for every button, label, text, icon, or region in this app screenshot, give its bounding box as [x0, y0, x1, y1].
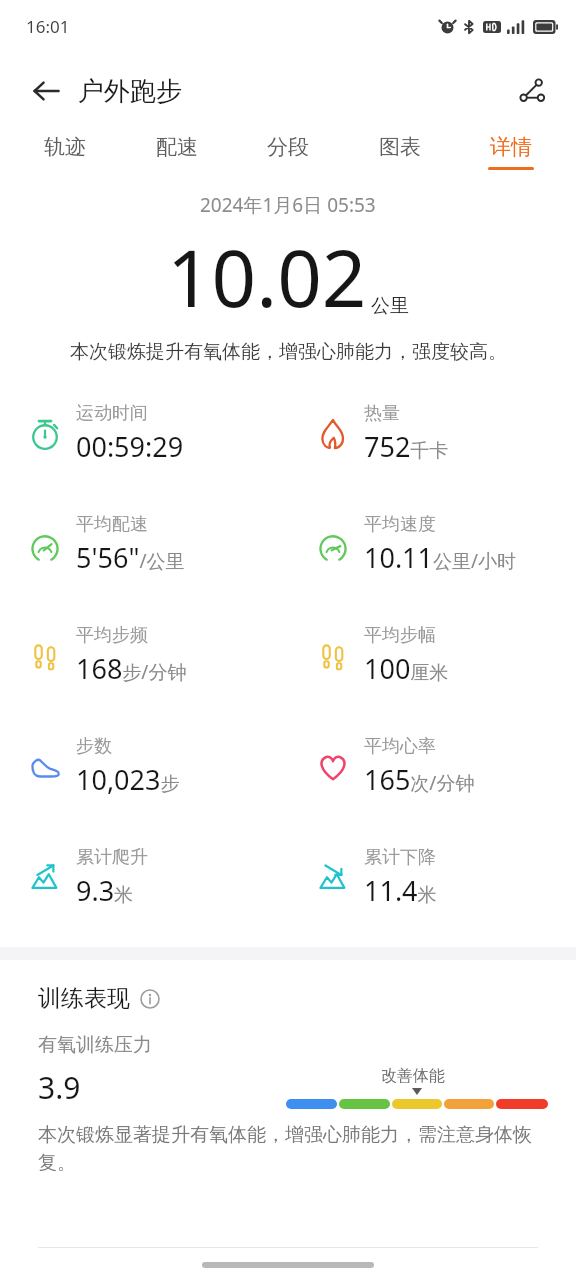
staticText: 户外跑步 — [78, 75, 182, 108]
staticText: 有氧训练压力 — [38, 1033, 152, 1057]
button[interactable]: 平均配速 — [0, 489, 288, 600]
staticText: 详情 — [490, 134, 532, 160]
staticText: 热量 — [364, 402, 400, 425]
staticText: 改善体能 — [381, 1066, 445, 1086]
staticText: 步数 — [76, 735, 112, 758]
staticText: 累计下降 — [364, 846, 436, 869]
staticText: 9.3米 — [76, 872, 134, 909]
button[interactable]: 平均步幅 — [288, 600, 576, 711]
staticText: 本次锻炼提升有氧体能，增强心肺能力，强度较高。 — [70, 340, 507, 364]
staticText: 165次/分钟 — [364, 761, 475, 798]
staticText: 10.11公里/小时 — [364, 539, 517, 576]
staticText: 10,023步 — [76, 761, 180, 798]
staticText: 轨迹 — [44, 134, 86, 160]
button[interactable]: 分段 — [259, 130, 317, 174]
staticText: 本次锻炼显著提升有氧体能，增强心肺能力，需注意身体恢复。 — [38, 1123, 538, 1175]
button[interactable]: 配速 — [148, 130, 206, 174]
staticText: 16:01 — [26, 15, 70, 38]
button[interactable]: 平均心率 — [288, 711, 576, 822]
staticText: 累计爬升 — [76, 846, 148, 869]
button[interactable]: 平均速度 — [288, 489, 576, 600]
staticText: 平均步幅 — [364, 624, 436, 647]
staticText: 平均步频 — [76, 624, 148, 647]
staticText: 配速 — [156, 134, 198, 160]
staticText: 100厘米 — [364, 650, 449, 687]
staticText: 训练表现 — [38, 984, 130, 1013]
button[interactable]: 图表 — [371, 130, 429, 174]
staticText: 11.4米 — [364, 872, 437, 909]
staticText: 3.9 — [38, 1067, 81, 1108]
staticText: 运动时间 — [76, 402, 148, 425]
button[interactable]: 热量 — [288, 378, 576, 489]
button[interactable]: 平均步频 — [0, 600, 288, 711]
staticText: 00:59:29 — [76, 428, 184, 465]
button[interactable]: 累计爬升 — [0, 822, 288, 933]
staticText: 168步/分钟 — [76, 650, 187, 687]
button[interactable]: 步数 — [0, 711, 288, 822]
button[interactable]: 说明 — [139, 988, 161, 1010]
staticText: 平均心率 — [364, 735, 436, 758]
button[interactable]: 运动时间 — [0, 378, 288, 489]
button[interactable]: 分享 — [508, 67, 556, 115]
staticText: 分段 — [267, 134, 309, 160]
staticText: 公里 — [371, 294, 409, 318]
button[interactable]: 详情 — [482, 130, 540, 174]
staticText: 2024年1月6日 05:53 — [200, 192, 376, 218]
button[interactable]: 累计下降 — [288, 822, 576, 933]
staticText: 10.02 — [167, 224, 367, 330]
staticText: 5'56"/公里 — [76, 539, 185, 576]
button[interactable]: 轨迹 — [36, 130, 94, 174]
staticText: 平均配速 — [76, 513, 148, 536]
staticText: 图表 — [379, 134, 421, 160]
button[interactable]: 返回 — [22, 67, 70, 115]
staticText: 752千卡 — [364, 428, 449, 465]
staticText: 平均速度 — [364, 513, 436, 536]
